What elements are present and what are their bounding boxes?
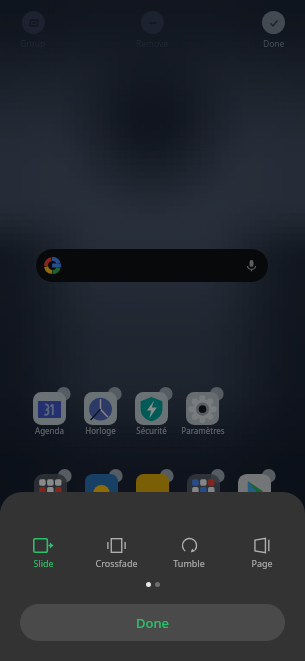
other: Voice search — [244, 258, 259, 273]
button[interactable] — [127, 472, 178, 507]
button[interactable]: Paramètres — [177, 390, 228, 436]
button[interactable] — [229, 472, 280, 507]
staticText: Tumble — [173, 557, 205, 569]
staticText: Agenda — [35, 425, 64, 436]
staticText: Done — [136, 614, 170, 632]
button[interactable]: Google search — [36, 249, 268, 282]
staticText: Done — [263, 38, 285, 50]
button[interactable] — [76, 472, 127, 507]
staticText: Horloge — [85, 425, 116, 436]
staticText: Sécurité — [136, 425, 167, 436]
staticText: Remove — [136, 38, 169, 50]
button[interactable]: Tumble — [153, 538, 225, 569]
button[interactable]: Group — [14, 11, 52, 50]
button[interactable]: Sécurité — [126, 390, 177, 436]
button[interactable] — [25, 472, 76, 507]
staticText: Slide — [33, 557, 54, 569]
button[interactable]: Remove — [130, 11, 175, 50]
button[interactable] — [178, 472, 229, 507]
button[interactable]: Horloge — [75, 390, 126, 436]
button[interactable]: Agenda — [24, 390, 75, 436]
staticText: Page — [251, 557, 273, 569]
button[interactable]: Page — [226, 538, 298, 569]
staticText: Crossfade — [95, 557, 138, 569]
other: Google search — [44, 257, 61, 274]
button[interactable]: Slide — [7, 538, 79, 569]
staticText: Paramètres — [181, 425, 225, 436]
staticText: Group — [20, 38, 46, 50]
button[interactable]: Done — [256, 11, 291, 50]
button[interactable]: Done — [20, 604, 285, 641]
button[interactable]: Crossfade — [80, 538, 152, 569]
